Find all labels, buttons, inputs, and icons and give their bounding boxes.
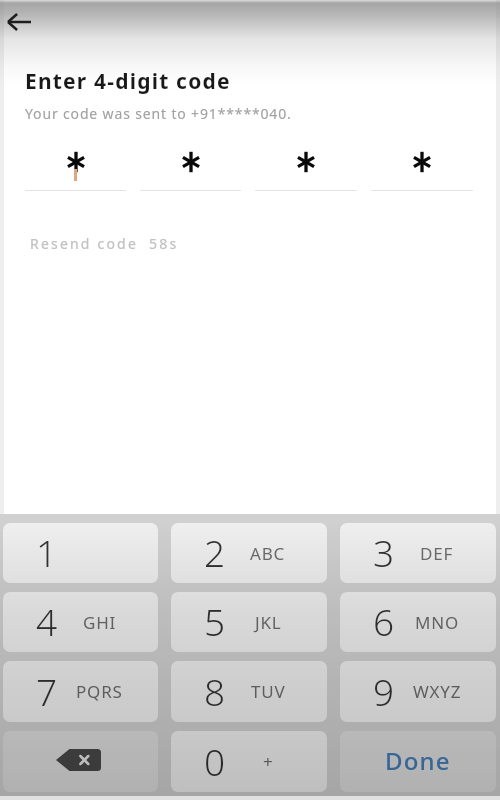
staticText: DEF <box>420 542 454 565</box>
button[interactable]: 9 <box>340 661 496 722</box>
staticText: 9 <box>373 666 395 716</box>
button[interactable]: Back <box>0 0 44 44</box>
button[interactable]: Done <box>340 731 496 792</box>
button[interactable]: 2 <box>171 523 327 583</box>
staticText: 6 <box>373 596 395 646</box>
staticText: GHI <box>83 611 117 634</box>
staticText: TUV <box>251 680 286 703</box>
staticText: 4 <box>36 596 58 646</box>
button[interactable]: 6 <box>340 592 496 652</box>
button[interactable]: 4 <box>3 592 158 652</box>
staticText: MNO <box>415 611 460 634</box>
staticText: 7 <box>36 666 58 716</box>
staticText: 3 <box>373 527 395 577</box>
button[interactable]: 3 <box>340 523 496 583</box>
button[interactable]: 5 <box>171 592 327 652</box>
staticText: Done <box>385 744 451 777</box>
button[interactable]: 0 <box>171 731 327 792</box>
button[interactable]: Resend code <box>30 234 139 253</box>
button[interactable]: 1 <box>3 523 158 583</box>
button[interactable]: 8 <box>171 661 327 722</box>
staticText: ABC <box>250 542 286 565</box>
staticText: 1 <box>36 527 58 577</box>
staticText: PQRS <box>76 680 123 703</box>
button[interactable]: Backspace <box>3 731 158 792</box>
staticText: 58s <box>149 234 179 253</box>
staticText: + <box>263 750 274 773</box>
button[interactable] <box>371 140 473 191</box>
staticText: 2 <box>204 527 226 577</box>
staticText: WXYZ <box>413 680 462 703</box>
staticText: 8 <box>204 666 226 716</box>
staticText: 5 <box>204 596 226 646</box>
staticText: Your code was sent to +91*****040. <box>25 104 292 123</box>
staticText: 0 <box>204 736 226 786</box>
button[interactable] <box>140 140 241 191</box>
button[interactable] <box>25 140 126 191</box>
staticText: Enter 4-digit code <box>25 67 231 96</box>
button[interactable] <box>255 140 357 191</box>
staticText: JKL <box>255 611 282 634</box>
button[interactable]: 7 <box>3 661 158 722</box>
